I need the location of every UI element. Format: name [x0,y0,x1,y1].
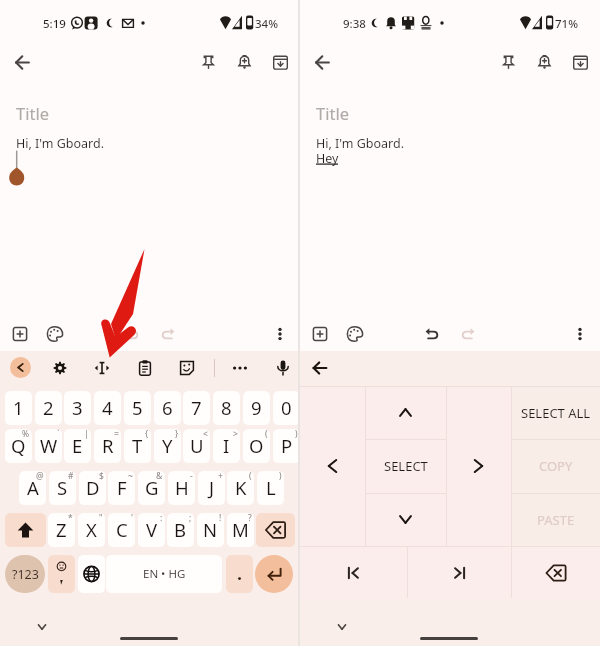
button[interactable]: ?123 [5,555,45,593]
button[interactable]: Redo [154,320,182,348]
button[interactable]: X [78,513,105,547]
button[interactable]: E [64,429,91,463]
button[interactable]: Undo [118,320,146,348]
button[interactable]: 7 [183,391,210,425]
button[interactable]: S [49,471,76,505]
button[interactable]: Z [48,513,75,547]
button[interactable]: Archive [566,48,595,77]
button[interactable]: Back [10,357,31,378]
button[interactable]: PASTE [511,493,600,546]
staticText: L [266,475,276,500]
button[interactable]: Settings [46,354,74,382]
button[interactable]: R [94,429,121,463]
button[interactable]: Q [5,429,32,463]
button[interactable]: 8 [213,391,240,425]
button[interactable]: Add [306,320,334,348]
button[interactable]: Move cursor up [365,386,446,439]
button[interactable]: SELECT ALL [511,386,600,439]
button[interactable]: Add [6,320,34,348]
button[interactable]: Y [154,429,181,463]
staticText: ( [265,429,268,440]
button[interactable]: Add reminder [230,48,259,77]
staticText: 9 [251,395,262,420]
staticText: > [233,429,238,440]
button[interactable]: EN • HG [106,555,222,593]
button[interactable]: H [168,471,195,505]
button[interactable]: Back [8,48,37,77]
button[interactable]: U [183,429,210,463]
button[interactable]: M [227,513,254,547]
button[interactable]: 0 [273,391,300,425]
button[interactable]: Change colour [41,320,69,348]
button[interactable]: Undo [418,320,446,348]
button[interactable]: L [257,471,284,505]
button[interactable]: Change colour [341,320,369,348]
button[interactable]: 2 [35,391,62,425]
button[interactable]: Voice input [269,354,297,382]
button[interactable]: F [108,471,135,505]
button[interactable]: More options [266,320,294,348]
button[interactable]: Shift [5,513,46,547]
staticText: : [160,513,163,524]
staticText: Title [16,102,49,124]
button[interactable]: T [124,429,151,463]
staticText: PASTE [537,511,575,529]
button[interactable]: V [138,513,165,547]
button[interactable]: B [167,513,194,547]
button[interactable]: Period [226,555,253,593]
button[interactable]: I [213,429,240,463]
button[interactable]: Move cursor left [300,386,365,546]
button[interactable]: 5 [124,391,151,425]
button[interactable]: Redo [454,320,482,348]
button[interactable]: Hide keyboard [30,615,54,639]
button[interactable]: Backspace [512,546,600,600]
staticText: { [145,429,149,440]
button[interactable]: 6 [154,391,181,425]
button[interactable]: K [227,471,254,505]
button[interactable]: More [226,354,254,382]
button[interactable]: Clipboard [131,354,159,382]
staticText: 9:38 [343,16,366,32]
button[interactable]: COPY [511,439,600,493]
button[interactable]: Move to start [300,546,407,598]
staticText: R [102,433,114,458]
button[interactable]: Pin [194,48,223,77]
button[interactable]: O [243,429,270,463]
staticText: Q [11,433,26,458]
button[interactable]: 9 [243,391,270,425]
button[interactable]: Backspace [256,513,295,547]
button[interactable]: C [108,513,135,547]
button[interactable]: P [273,429,300,463]
button[interactable]: Switch language [78,555,105,593]
button[interactable]: Pin [494,48,523,77]
staticText: Z [56,517,67,542]
button[interactable]: Move cursor down [365,493,446,546]
button[interactable]: Enter [255,555,293,593]
button[interactable]: Move to end [407,546,512,598]
button[interactable]: 4 [94,391,121,425]
button[interactable]: Stickers [173,354,201,382]
button[interactable]: 1 [5,391,32,425]
button[interactable]: 3 [64,391,91,425]
button[interactable]: A [19,471,46,505]
button[interactable]: W [35,429,62,463]
button[interactable]: Move cursor right [446,386,511,546]
staticText: | [84,429,89,440]
button[interactable]: D [79,471,106,505]
button[interactable]: Hide keyboard [330,615,354,639]
staticText: 1 [13,395,24,420]
staticText: EN • HG [143,566,186,582]
button[interactable]: N [197,513,224,547]
button[interactable]: Archive [266,48,295,77]
staticText: Title [316,102,349,124]
button[interactable]: More options [566,320,594,348]
button[interactable]: Text editing [88,354,116,382]
button[interactable]: G [138,471,165,505]
button[interactable]: Add reminder [530,48,559,77]
button[interactable]: Back [306,354,334,382]
button[interactable]: J [198,471,225,505]
button[interactable]: Back [308,48,337,77]
staticText: X [86,517,97,542]
button[interactable]: SELECT [365,439,446,493]
button[interactable]: Emoji, comma [48,555,75,593]
